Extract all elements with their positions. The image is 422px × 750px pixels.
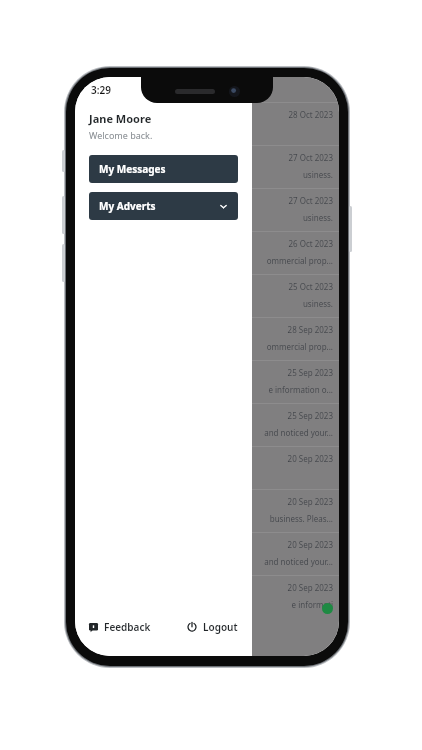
staticText: e information o... <box>258 384 333 395</box>
button[interactable]: 20 Sep 2023 <box>252 446 339 489</box>
staticText: 25 Sep 2023 <box>258 367 333 378</box>
staticText: ommercial prop... <box>258 341 333 352</box>
button[interactable]: 25 Sep 2023 <box>252 403 339 446</box>
staticText: usiness. <box>258 169 333 180</box>
staticText: 28 Oct 2023 <box>258 109 333 120</box>
staticText: e informati <box>258 599 333 610</box>
staticText: Welcome back. <box>89 129 153 141</box>
staticText: 20 Sep 2023 <box>258 539 333 550</box>
button[interactable]: 28 Oct 2023 <box>252 102 339 145</box>
button[interactable]: 25 Sep 2023 <box>252 360 339 403</box>
staticText: 25 Sep 2023 <box>258 410 333 421</box>
button[interactable]: My Adverts <box>89 192 238 220</box>
staticText: 20 Sep 2023 <box>258 453 333 464</box>
staticText: My Adverts <box>99 199 156 213</box>
staticText: 28 Sep 2023 <box>258 324 333 335</box>
button[interactable]: My Messages <box>89 155 238 183</box>
staticText: 26 Oct 2023 <box>258 238 333 249</box>
staticText: usiness. <box>258 298 333 309</box>
staticText: usiness. <box>258 212 333 223</box>
button[interactable]: 26 Oct 2023 <box>252 231 339 274</box>
staticText: Feedback <box>104 620 151 634</box>
staticText: 25 Oct 2023 <box>258 281 333 292</box>
staticText: 20 Sep 2023 <box>258 582 333 593</box>
button[interactable]: Logout <box>187 616 238 638</box>
staticText: My Messages <box>99 162 166 176</box>
button[interactable]: 28 Sep 2023 <box>252 317 339 360</box>
staticText: ommercial prop... <box>258 255 333 266</box>
staticText: business. Pleas... <box>258 513 333 524</box>
button[interactable]: 20 Sep 2023 <box>252 489 339 532</box>
staticText: 3:29 <box>91 83 111 97</box>
button[interactable]: 20 Sep 2023 <box>252 532 339 575</box>
staticText: Logout <box>203 620 238 634</box>
button[interactable]: 27 Oct 2023 <box>252 145 339 188</box>
button[interactable]: 20 Sep 2023 <box>252 575 339 618</box>
staticText: and noticed your... <box>258 556 333 567</box>
staticText: 20 Sep 2023 <box>258 496 333 507</box>
staticText: 27 Oct 2023 <box>258 152 333 163</box>
button[interactable]: 25 Oct 2023 <box>252 274 339 317</box>
button[interactable]: Feedback <box>89 616 151 638</box>
staticText: and noticed your... <box>258 427 333 438</box>
staticText: Jane Moore <box>89 111 152 126</box>
staticText: 27 Oct 2023 <box>258 195 333 206</box>
button[interactable]: 27 Oct 2023 <box>252 188 339 231</box>
